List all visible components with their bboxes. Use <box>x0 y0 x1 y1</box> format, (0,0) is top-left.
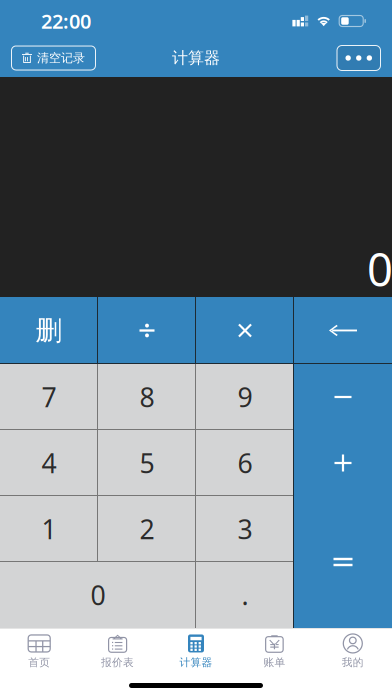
staticText: 9 <box>237 379 252 415</box>
staticText: 首页 <box>28 656 50 669</box>
staticText: 4 <box>41 445 56 481</box>
button[interactable]: 7 <box>0 364 98 430</box>
staticText: 6 <box>237 445 252 481</box>
button[interactable]: 0 <box>0 562 196 628</box>
button[interactable]: 减 <box>294 364 392 430</box>
button[interactable]: 等于 <box>294 496 392 628</box>
staticText: 计算器 <box>179 656 212 669</box>
staticText: 清空记录 <box>37 51 85 65</box>
staticText: 7 <box>41 379 56 415</box>
staticText: 计算器 <box>172 48 220 68</box>
button[interactable]: 报价表 <box>78 628 157 674</box>
staticText: 1 <box>41 511 56 547</box>
staticText: . <box>241 577 248 613</box>
button[interactable]: 5 <box>98 430 196 496</box>
button[interactable]: 1 <box>0 496 98 562</box>
button[interactable]: 3 <box>196 496 294 562</box>
button[interactable]: 首页 <box>0 628 78 674</box>
button[interactable]: 退格 <box>294 297 392 364</box>
staticText: 删 <box>35 314 62 347</box>
staticText: 5 <box>139 445 154 481</box>
button[interactable]: 账单 <box>235 628 314 674</box>
staticText: 22:00 <box>41 8 91 34</box>
staticText: 2 <box>139 511 154 547</box>
button[interactable]: 4 <box>0 430 98 496</box>
button[interactable]: 乘 <box>196 297 294 364</box>
staticText: 3 <box>237 511 252 547</box>
button[interactable]: 6 <box>196 430 294 496</box>
button[interactable]: 更多 <box>337 45 380 70</box>
staticText: 账单 <box>263 656 285 669</box>
staticText: 0 <box>90 577 105 613</box>
button[interactable]: 除 <box>98 297 196 364</box>
staticText: 0 <box>367 239 392 299</box>
button[interactable]: 清空记录 <box>11 46 95 70</box>
button[interactable]: 加 <box>294 430 392 496</box>
button[interactable]: 删 <box>0 297 98 364</box>
staticText: 我的 <box>342 656 364 669</box>
button[interactable]: 计算器 <box>157 628 235 674</box>
button[interactable]: 8 <box>98 364 196 430</box>
button[interactable]: 我的 <box>314 628 392 674</box>
button[interactable]: . <box>196 562 294 628</box>
button[interactable]: 2 <box>98 496 196 562</box>
button[interactable]: 9 <box>196 364 294 430</box>
staticText: 报价表 <box>101 656 134 669</box>
staticText: 8 <box>139 379 154 415</box>
